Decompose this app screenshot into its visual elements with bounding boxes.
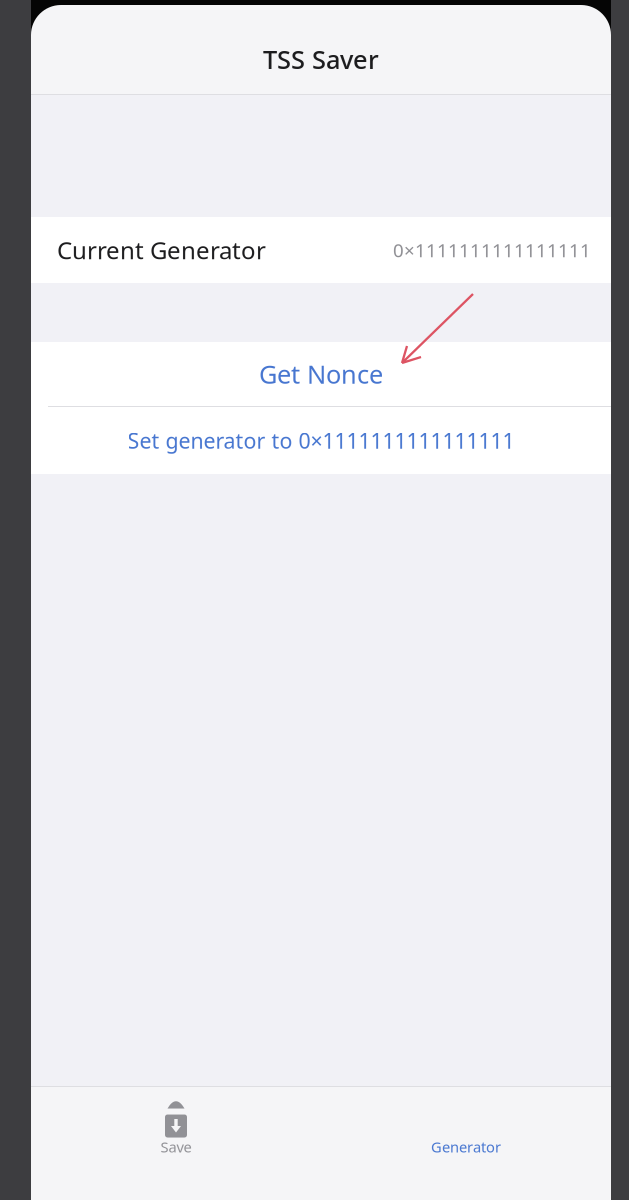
staticText: 0×1111111111111111 (393, 238, 591, 262)
staticText: Get Nonce (259, 357, 383, 391)
staticText: Generator (431, 1137, 501, 1156)
staticText: Save (160, 1137, 191, 1156)
staticText: Current Generator (57, 234, 266, 266)
staticText: TSS Saver (263, 42, 379, 76)
button[interactable]: Set generator to 0×1111111111111111 (31, 407, 611, 474)
staticText: Set generator to 0×1111111111111111 (127, 426, 514, 455)
button[interactable]: Current Generator (31, 217, 611, 283)
button[interactable]: Get Nonce (31, 342, 611, 406)
button[interactable]: Generator (321, 1087, 611, 1200)
button[interactable]: Save (31, 1087, 321, 1200)
